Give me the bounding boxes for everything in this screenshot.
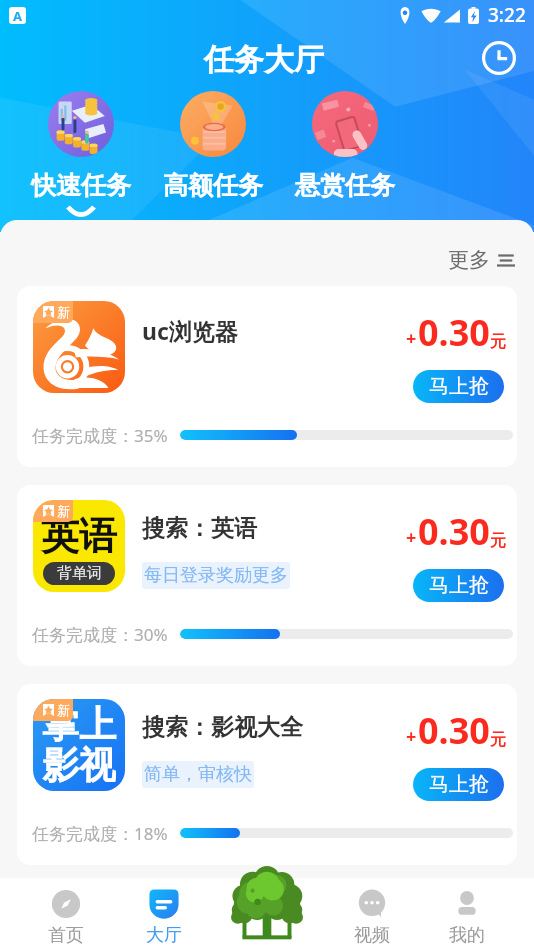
button[interactable]: 马上抢 [413,569,504,602]
staticText: 更多 [448,247,490,273]
staticText: 悬赏任务 [295,170,395,201]
staticText: uc浏览器 [142,315,238,346]
button[interactable]: 快速任务 [14,91,148,215]
button[interactable]: 马上抢 [413,370,504,403]
staticText: + [406,724,417,749]
staticText: 马上抢 [429,772,489,797]
staticText: 掌上 [42,701,116,748]
staticText: 影视 [42,742,116,787]
staticText: 大厅 [146,924,182,947]
staticText: 元 [490,332,506,352]
button[interactable]: 悬赏任务 [278,91,412,201]
staticText: 搜索：英语 [142,514,257,543]
staticText: 视频 [354,924,390,947]
staticText: + [406,525,417,550]
button[interactable]: 视频 [331,878,412,950]
button[interactable]: 大厅 [123,878,204,950]
button[interactable]: 高额任务 [146,91,280,201]
button[interactable]: 掌上 [17,684,517,865]
staticText: 3:22 [488,2,526,28]
button[interactable]: 更多 [429,239,534,281]
staticText: 每日登录奖励更多 [144,564,288,587]
staticText: 新 [57,503,70,519]
staticText: + [406,326,417,351]
staticText: 背单词 [57,564,102,583]
staticText: 任务完成度：30% [32,623,168,646]
staticText: 高额任务 [163,170,263,201]
button[interactable]: 首页 [25,878,106,950]
staticText: 简单，审核快 [144,763,252,786]
button[interactable]: 英语 [17,485,517,666]
staticText: 元 [490,730,506,750]
staticText: 新 [57,304,70,320]
staticText: 0.30 [418,706,490,755]
staticText: 马上抢 [429,573,489,598]
staticText: 搜索：影视大全 [142,713,303,742]
staticText: 任务大厅 [204,41,324,79]
button[interactable]: 马上抢 [413,768,504,801]
staticText: 0.30 [418,308,490,357]
staticText: 马上抢 [429,374,489,399]
staticText: 新 [57,702,70,718]
button[interactable]: Task history [480,39,518,77]
staticText: A [13,7,22,24]
staticText: 首页 [48,924,84,947]
staticText: 0.30 [418,507,490,556]
staticText: 任务完成度：35% [32,424,168,447]
staticText: 快速任务 [31,170,131,201]
button[interactable]: 我的 [426,878,507,950]
staticText: 任务完成度：18% [32,822,168,845]
staticText: 英语 [41,512,117,560]
staticText: 我的 [449,924,485,947]
staticText: 元 [490,531,506,551]
button[interactable]: 新 [17,286,517,467]
button[interactable]: Plant tree [231,872,303,944]
